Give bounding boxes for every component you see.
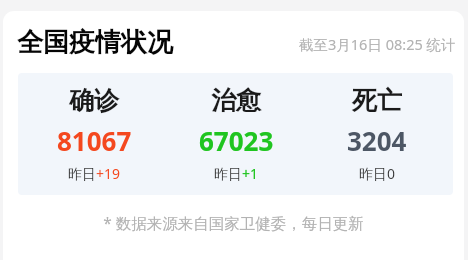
- button[interactable]: 全国疫情状况: [3, 11, 464, 260]
- staticText: 截至3月16日 08:25 统计: [299, 34, 456, 54]
- staticText: 81067: [57, 123, 132, 158]
- staticText: 67023: [199, 123, 274, 158]
- staticText: 全国疫情状况: [17, 26, 173, 59]
- staticText: 死亡: [352, 85, 402, 116]
- staticText: 3204: [347, 123, 407, 158]
- button[interactable]: 治愈: [171, 85, 301, 183]
- staticText: * 数据来源来自国家卫健委，每日更新: [103, 212, 364, 233]
- staticText: 昨日+19: [68, 164, 121, 183]
- staticText: 昨日+1: [214, 164, 259, 183]
- button[interactable]: 确诊: [29, 85, 159, 183]
- button[interactable]: 死亡: [312, 85, 442, 183]
- staticText: 确诊: [69, 85, 119, 116]
- staticText: 治愈: [211, 85, 261, 116]
- staticText: 昨日0: [359, 164, 396, 183]
